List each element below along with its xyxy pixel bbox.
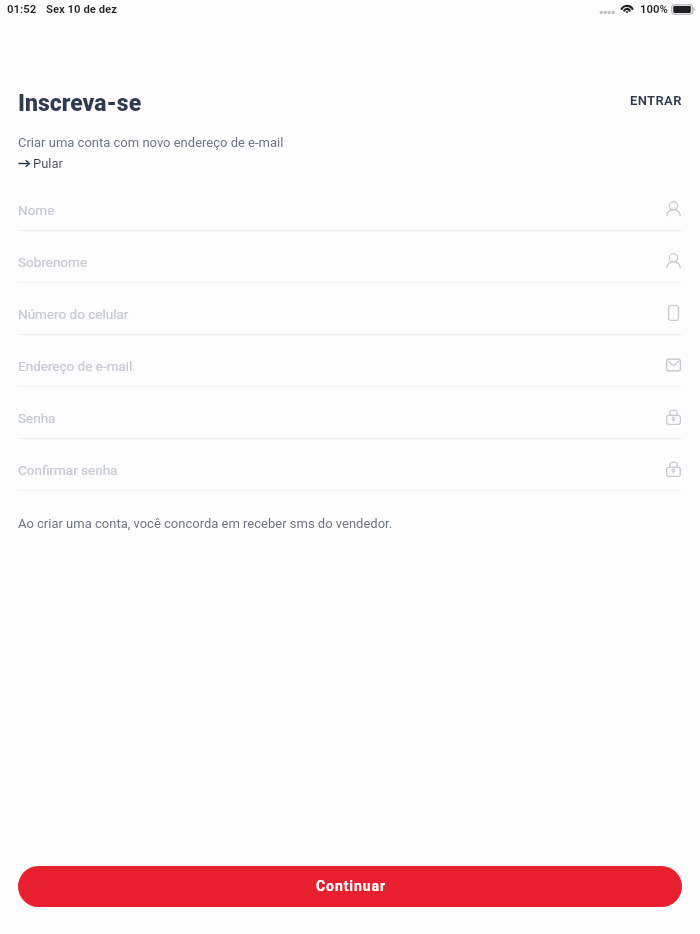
staticText: Continuar (316, 878, 386, 894)
button[interactable]: Continuar (18, 866, 682, 907)
other: Email (666, 357, 681, 373)
staticText: Sobrenome (18, 254, 88, 270)
button[interactable]: Senha (0, 387, 700, 439)
other: Password (666, 409, 681, 425)
other: Person (666, 253, 681, 269)
staticText: ENTRAR (630, 93, 682, 108)
staticText: Inscreva-se (18, 90, 142, 117)
button[interactable]: Número do celular (0, 283, 700, 335)
staticText: Pular (33, 156, 64, 171)
staticText: Número do celular (18, 306, 129, 322)
staticText: Endereço de e-mail (18, 358, 133, 374)
other: Password (666, 461, 681, 477)
staticText: Sex 10 de dez (46, 3, 117, 16)
button[interactable]: Confirmar senha (0, 439, 700, 491)
button[interactable]: Sobrenome (0, 231, 700, 283)
button[interactable]: ENTRAR (612, 85, 700, 116)
button[interactable]: Endereço de e-mail (0, 335, 700, 387)
staticText: Nome (18, 202, 55, 218)
other: Phone (666, 305, 681, 321)
staticText: Ao criar uma conta, você concorda em rec… (18, 516, 393, 531)
button[interactable]: Nome (0, 179, 700, 231)
staticText: Confirmar senha (18, 462, 118, 478)
staticText: Senha (18, 410, 56, 426)
other: Person (666, 201, 681, 217)
staticText: 01:52 (7, 3, 37, 16)
staticText: Criar uma conta com novo endereço de e-m… (18, 135, 284, 150)
button[interactable]: Pular (18, 155, 72, 173)
staticText: 100% (640, 3, 668, 16)
